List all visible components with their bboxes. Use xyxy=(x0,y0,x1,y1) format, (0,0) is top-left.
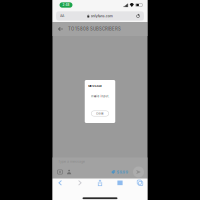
staticText: TO 15808 SUBSCRIBERS xyxy=(68,26,121,32)
button[interactable]: Back xyxy=(54,177,66,189)
staticText: $9.99 xyxy=(116,170,128,174)
staticText: MESSAGE xyxy=(88,84,102,88)
button[interactable]: Back xyxy=(56,23,65,34)
button[interactable]: Forward xyxy=(74,177,86,189)
button[interactable]: Send xyxy=(132,166,144,178)
button[interactable]: Bookmarks xyxy=(114,177,126,189)
staticText: Close xyxy=(96,112,104,115)
button[interactable]: Add photo xyxy=(57,170,62,174)
staticText: AA xyxy=(60,14,64,18)
button[interactable]: Reload xyxy=(133,11,142,20)
button[interactable]: Add voice message xyxy=(67,170,71,174)
button[interactable]: $9.99 xyxy=(111,170,128,174)
staticText: onlyfans.com xyxy=(91,14,113,18)
button[interactable]: Page settings xyxy=(57,11,66,20)
button[interactable]: Share xyxy=(94,177,106,189)
button[interactable]: Close xyxy=(91,111,109,116)
staticText: Invalid input. xyxy=(90,95,109,98)
button[interactable]: Tabs xyxy=(134,177,146,189)
staticText: Type a message xyxy=(58,159,85,164)
staticText: 2:48 xyxy=(62,3,69,7)
